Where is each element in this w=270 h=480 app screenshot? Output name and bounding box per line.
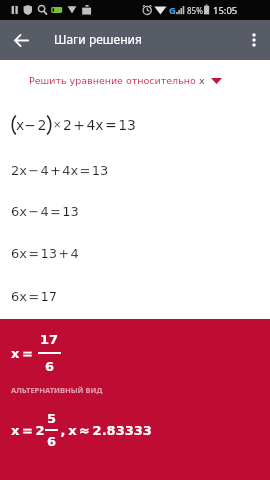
- staticText: 17: [40, 332, 59, 347]
- staticText: АЛЬТЕРНАТИВНЫЙ ВИД: [11, 385, 103, 395]
- staticText: 6x = 17: [11, 289, 57, 304]
- staticText: 6x − 4 = 13: [11, 204, 79, 219]
- staticText: x = 2: [11, 423, 45, 438]
- button[interactable]: Back: [7, 26, 35, 54]
- staticText: 85%: [187, 5, 203, 16]
- staticText: x: [199, 75, 205, 86]
- staticText: Шаги решения: [54, 31, 142, 47]
- button[interactable]: More options: [240, 26, 268, 54]
- button[interactable]: Решить уравнение относительно: [0, 60, 270, 101]
- staticText: 6: [47, 434, 57, 449]
- staticText: ×: [53, 119, 62, 131]
- staticText: 2 + 4x = 13: [63, 117, 136, 133]
- staticText: 6x = 13 + 4: [11, 246, 79, 261]
- staticText: , x ≈ 2.83333: [58, 423, 152, 438]
- staticText: Решить уравнение относительно: [29, 75, 199, 86]
- staticText: x =: [11, 346, 33, 361]
- staticText: x− 2: [16, 117, 47, 133]
- staticText: 2x − 4 + 4x = 13: [11, 163, 109, 178]
- staticText: 6: [45, 359, 55, 374]
- staticText: 15:05: [213, 4, 238, 17]
- staticText: 5: [47, 411, 57, 426]
- staticText: G: [169, 4, 176, 17]
